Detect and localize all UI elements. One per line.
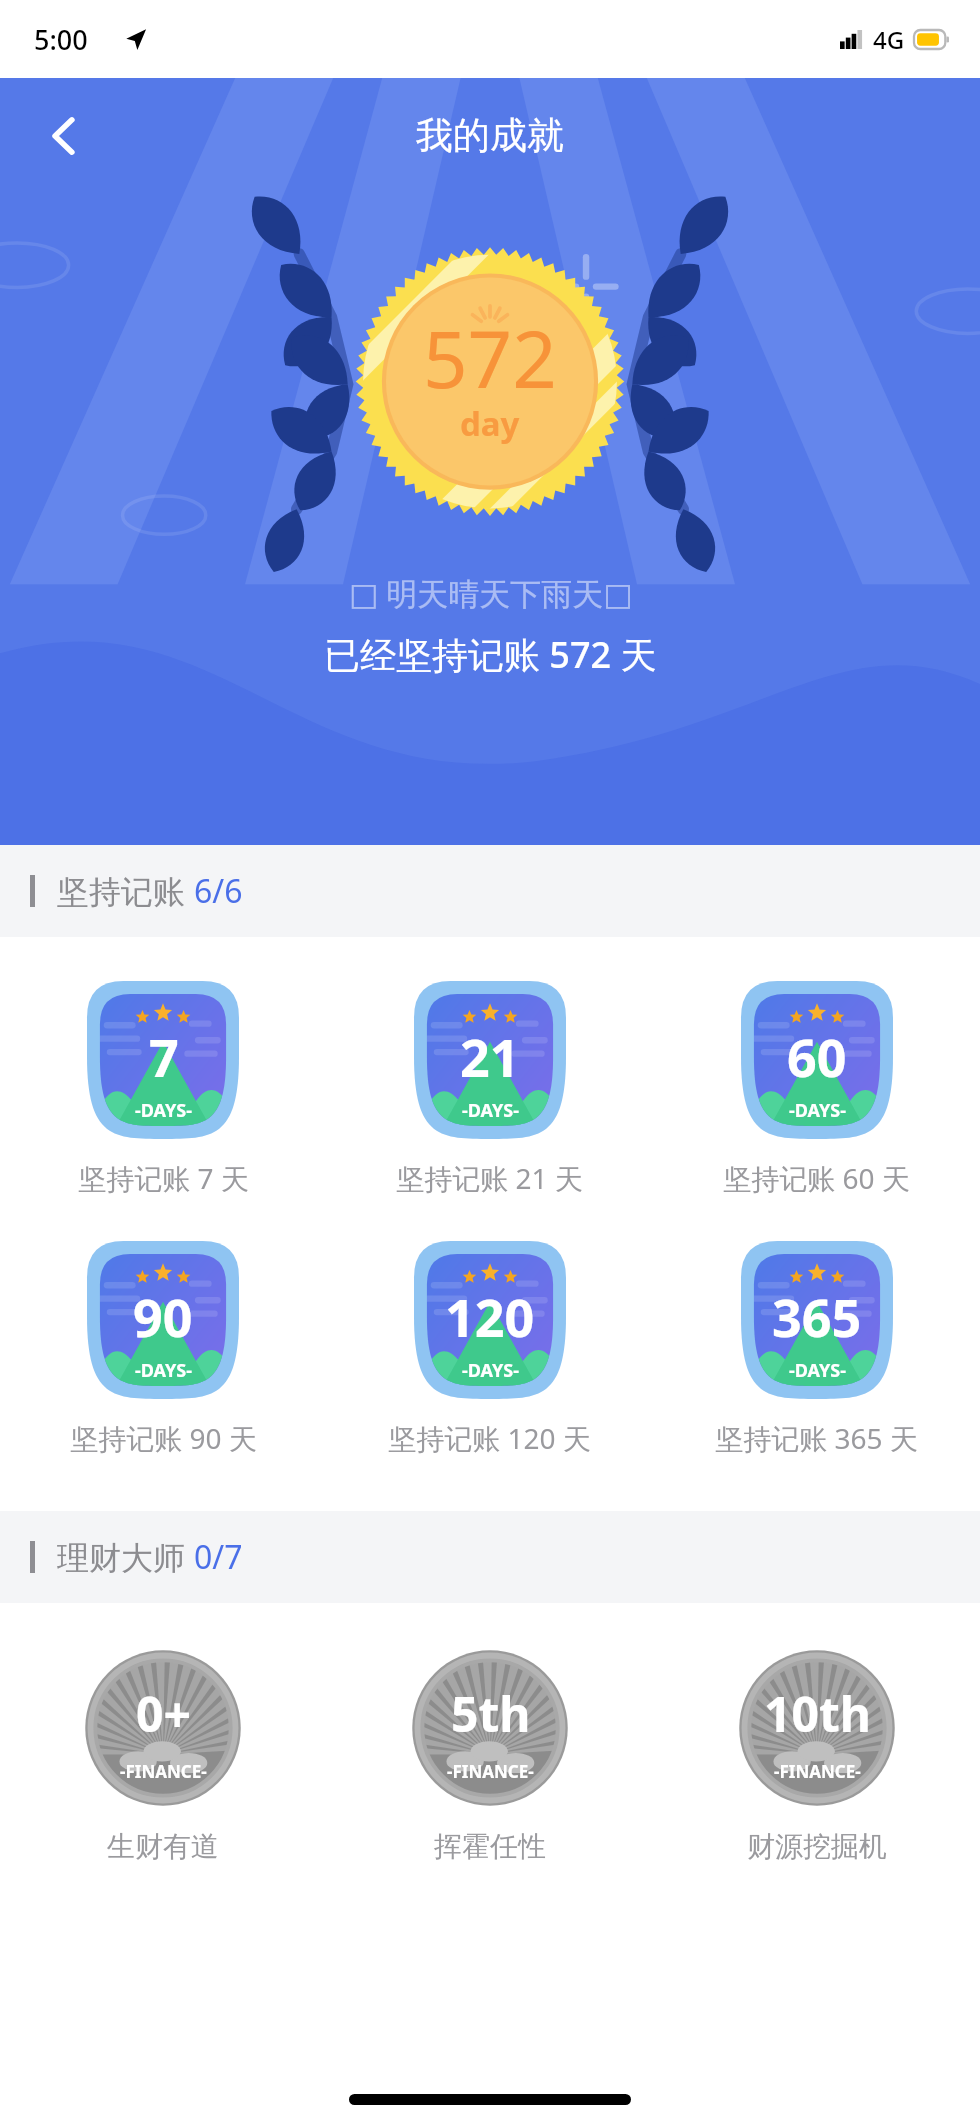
staticText: 90 [133,1281,193,1352]
staticText: 60 [787,1021,847,1092]
staticText: -FINANCE- [774,1760,861,1783]
button[interactable]: 21 [326,981,653,1197]
staticText: 5th [451,1681,531,1746]
staticText: -FINANCE- [447,1760,534,1783]
staticText: day [460,401,520,446]
staticText: -DAYS- [789,1098,846,1123]
staticText: 572 [423,305,557,411]
button[interactable]: 7 [0,981,326,1197]
staticText: 生财有道 [107,1829,219,1864]
staticText: -DAYS- [462,1358,519,1383]
staticText: 坚持记账 120 天 [388,1419,591,1457]
button[interactable]: 120 [326,1241,653,1457]
staticText: -DAYS- [789,1358,846,1383]
staticText: 365 [772,1281,862,1352]
staticText: 0/7 [194,1535,243,1579]
staticText: 已经坚持记账 572 天 [324,630,657,679]
staticText: 坚持记账 365 天 [715,1419,918,1457]
button[interactable]: 10th [653,1647,980,1864]
staticText: 坚持记账 21 天 [396,1159,583,1197]
button[interactable]: 90 [0,1241,326,1457]
staticText: □ 明天晴天下雨天□ [349,572,633,614]
button[interactable]: 0+ [0,1647,326,1864]
staticText: 坚持记账 [57,869,194,913]
staticText: 7 [149,1021,179,1092]
button[interactable]: 60 [653,981,980,1197]
staticText: 挥霍任性 [434,1829,546,1864]
staticText: -FINANCE- [120,1760,207,1783]
staticText: 6/6 [194,869,243,913]
button[interactable]: Back [26,98,102,174]
staticText: -DAYS- [462,1098,519,1123]
staticText: 10th [764,1681,871,1746]
staticText: -DAYS- [135,1098,192,1123]
button[interactable]: 365 [653,1241,980,1457]
staticText: 5:00 [34,21,88,58]
staticText: 0+ [136,1681,191,1746]
staticText: 坚持记账 60 天 [723,1159,910,1197]
button[interactable]: 5th [326,1647,653,1864]
staticText: 理财大师 [57,1535,194,1579]
staticText: 我的成就 [416,112,564,159]
staticText: 坚持记账 90 天 [70,1419,257,1457]
staticText: 120 [445,1281,535,1352]
staticText: 4G [873,23,905,56]
staticText: 坚持记账 7 天 [78,1159,249,1197]
staticText: 21 [460,1021,520,1092]
staticText: -DAYS- [135,1358,192,1383]
staticText: 财源挖掘机 [747,1829,887,1864]
